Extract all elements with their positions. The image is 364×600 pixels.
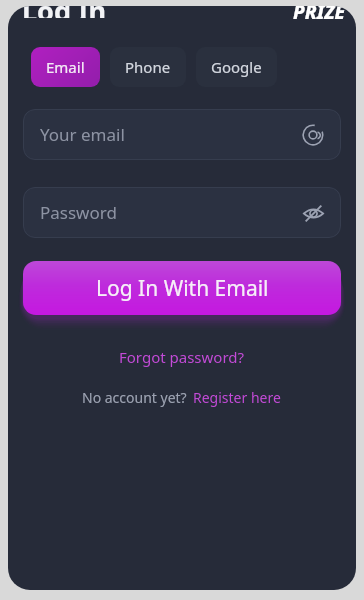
staticText: Phone	[125, 57, 171, 77]
button[interactable]: Password	[23, 187, 341, 238]
button[interactable]: Log In With Email	[23, 261, 341, 315]
other: Show password	[300, 200, 326, 226]
button[interactable]: Your email	[23, 109, 341, 160]
staticText: Forgot password?	[119, 347, 245, 367]
staticText: Password	[40, 201, 300, 224]
staticText: Log In With Email	[96, 274, 269, 303]
staticText: Email	[46, 57, 85, 77]
button[interactable]: Google	[196, 47, 277, 87]
button[interactable]: Email	[31, 47, 100, 87]
other: Email	[300, 122, 326, 148]
button[interactable]: Forgot password?	[111, 343, 253, 371]
button[interactable]: Register here	[191, 385, 283, 410]
staticText: No account yet?	[82, 388, 191, 407]
staticText: Register here	[193, 388, 281, 407]
staticText: Log In	[22, 6, 107, 18]
button[interactable]: Phone	[110, 47, 186, 87]
staticText: Your email	[40, 123, 300, 146]
staticText: PRIZE	[293, 6, 346, 25]
staticText: Google	[211, 57, 262, 77]
